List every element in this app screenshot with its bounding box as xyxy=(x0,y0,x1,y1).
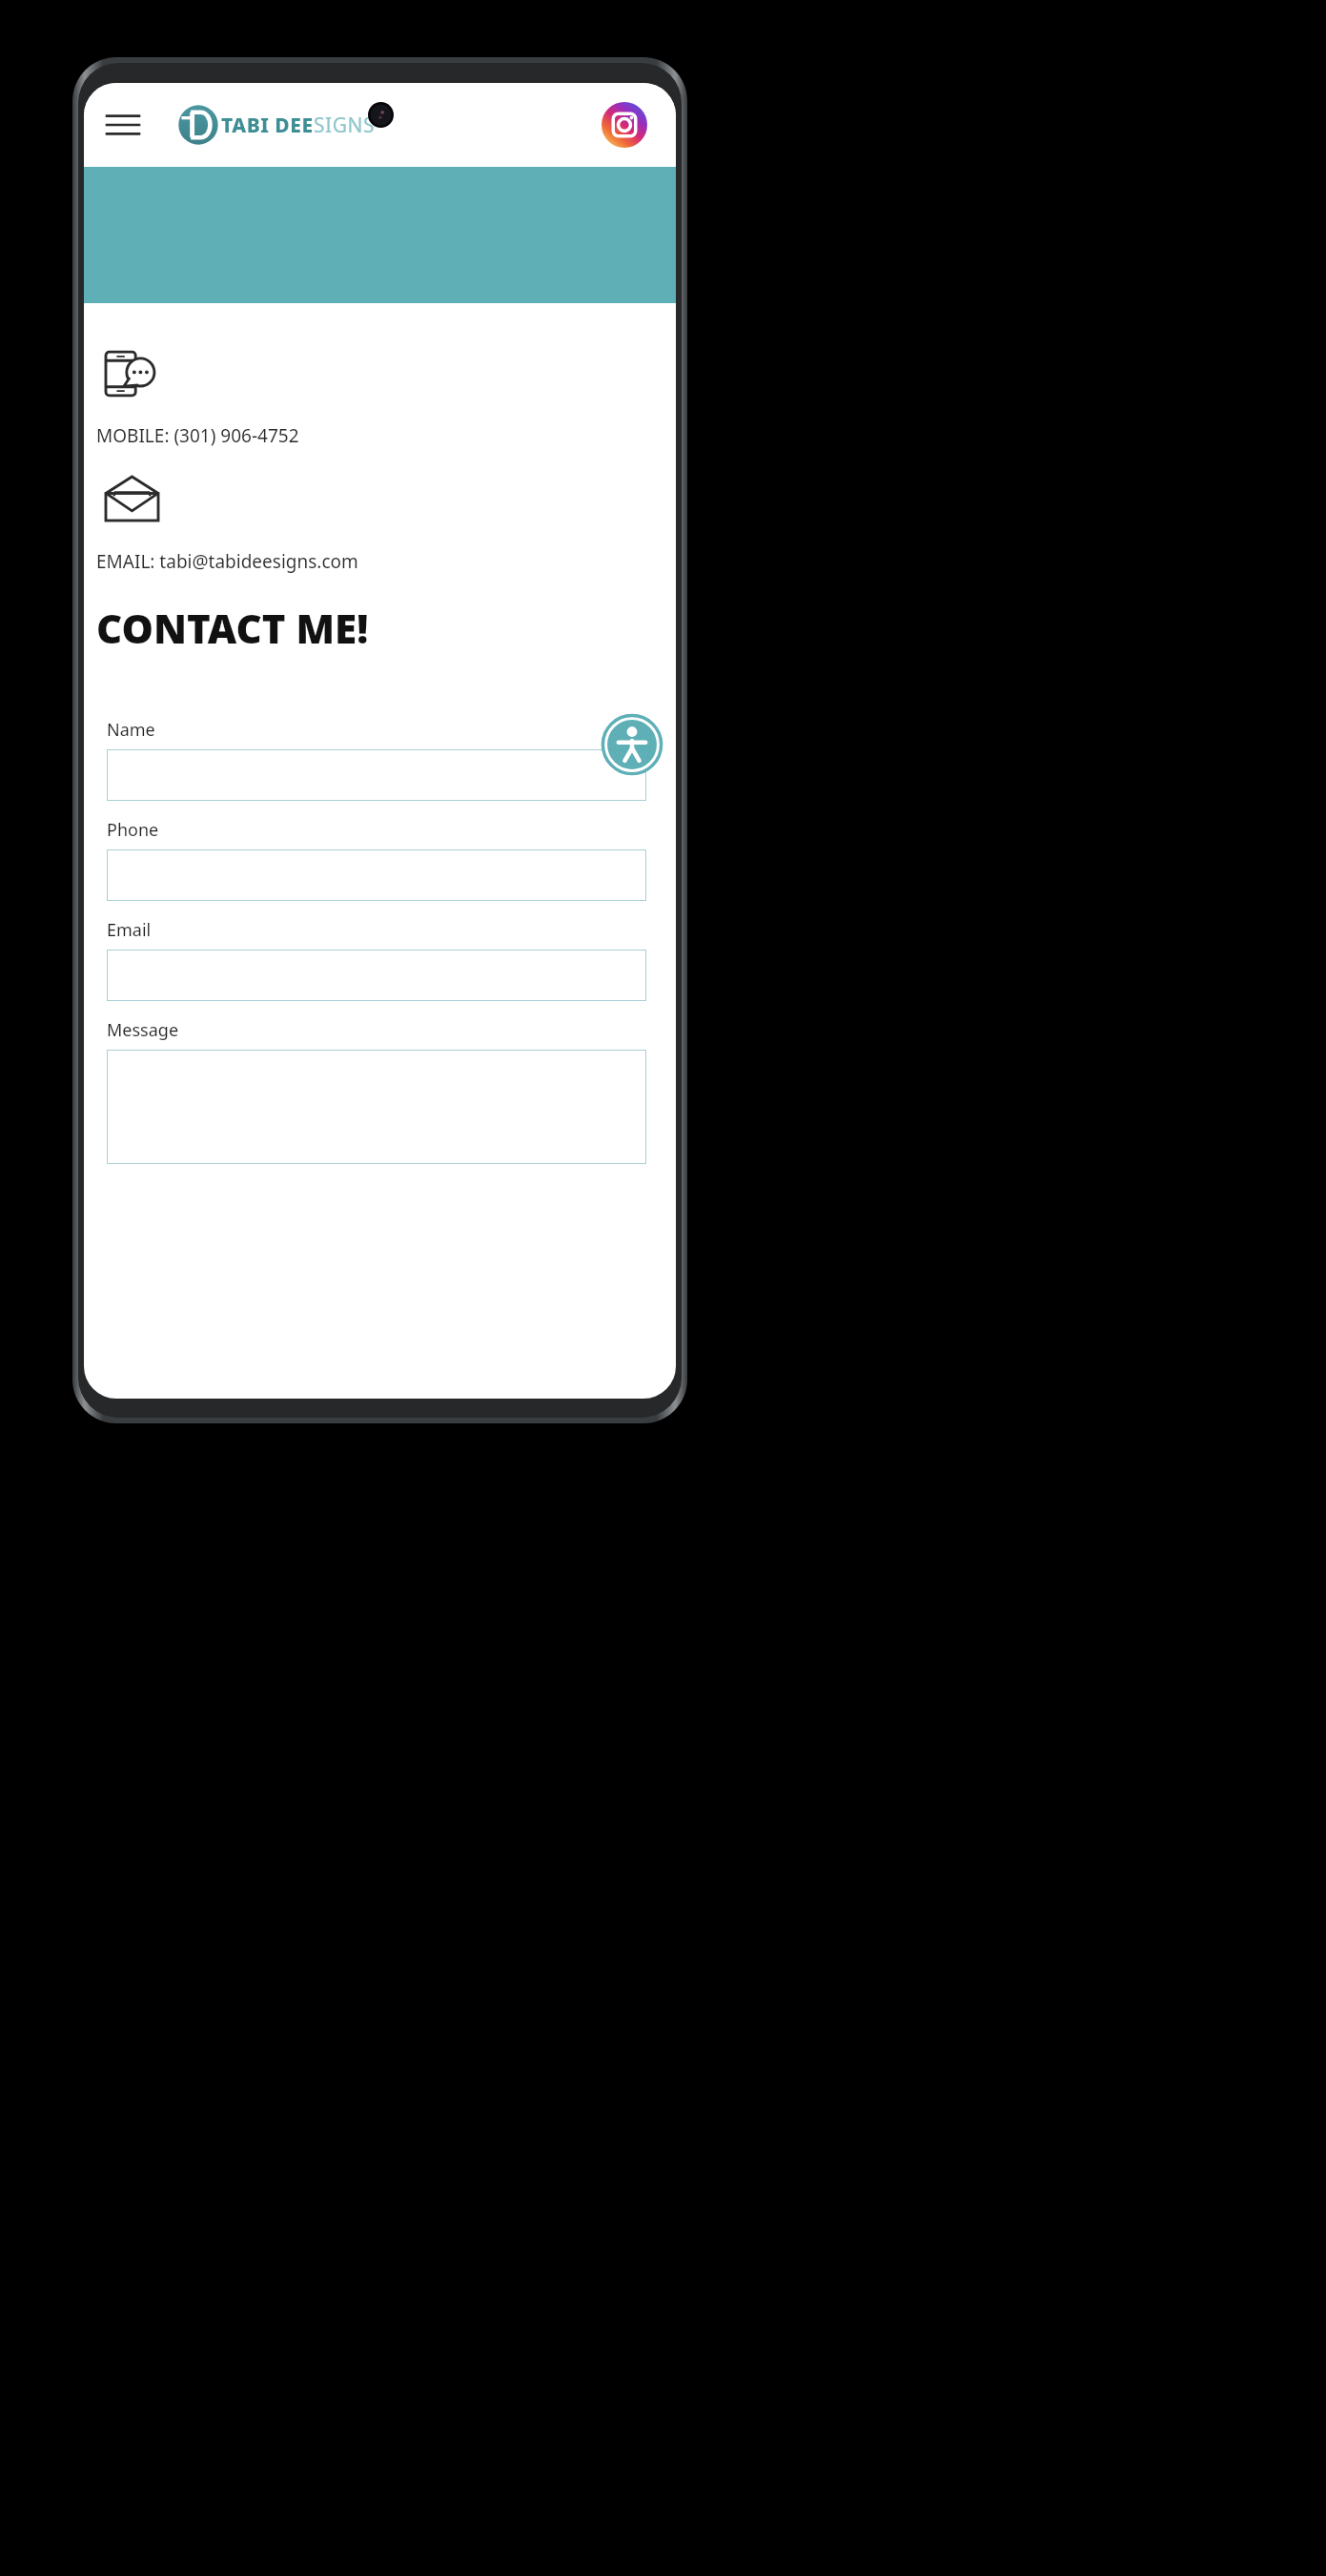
button[interactable]: Email xyxy=(107,918,646,1001)
staticText: Name xyxy=(107,718,155,742)
button[interactable]: Message xyxy=(107,1018,646,1164)
staticText: MOBILE: (301) 906-4752 xyxy=(96,423,299,448)
button[interactable]: Accessibility options xyxy=(601,713,663,776)
staticText: SIGNS xyxy=(314,112,375,139)
staticText: CONTACT ME! xyxy=(96,601,369,655)
staticText: Email xyxy=(107,918,152,942)
button[interactable]: Name xyxy=(107,718,646,801)
button[interactable]: Phone xyxy=(107,818,646,901)
button[interactable]: TABI DEE xyxy=(177,104,375,146)
button[interactable]: Menu xyxy=(97,99,149,151)
staticText: Phone xyxy=(107,818,159,842)
staticText: EMAIL: tabi@tabideesigns.com xyxy=(96,549,358,574)
staticText: Message xyxy=(107,1018,179,1042)
button[interactable]: Instagram xyxy=(600,100,649,150)
staticText: TABI DEE xyxy=(221,112,314,139)
